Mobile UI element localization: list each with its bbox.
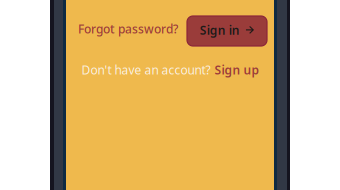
staticText: Sign up [214,62,259,78]
button[interactable]: Forgot password? [78,16,178,37]
staticText: Forgot password? [78,21,178,37]
staticText: Sign in [200,22,240,38]
staticText: Don't have an account? [81,62,210,78]
button[interactable]: Sign up [214,62,259,78]
button[interactable]: Sign in [187,16,267,46]
